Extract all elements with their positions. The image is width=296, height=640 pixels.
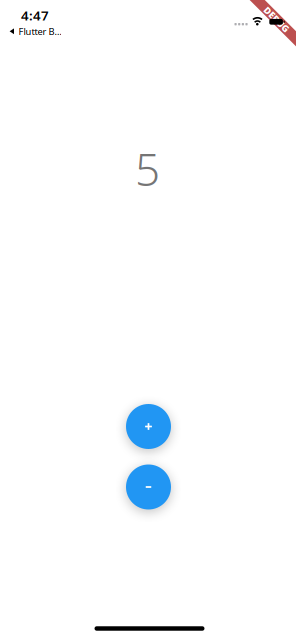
staticText: 4:47 (21, 6, 49, 24)
staticText: 5 (135, 140, 160, 198)
staticText: DEBUG (261, 13, 293, 26)
button[interactable]: Increment (126, 404, 171, 449)
button[interactable]: Flutter B… (8, 23, 63, 40)
staticText: Flutter B… (18, 25, 61, 38)
button[interactable]: Decrement (126, 464, 171, 509)
